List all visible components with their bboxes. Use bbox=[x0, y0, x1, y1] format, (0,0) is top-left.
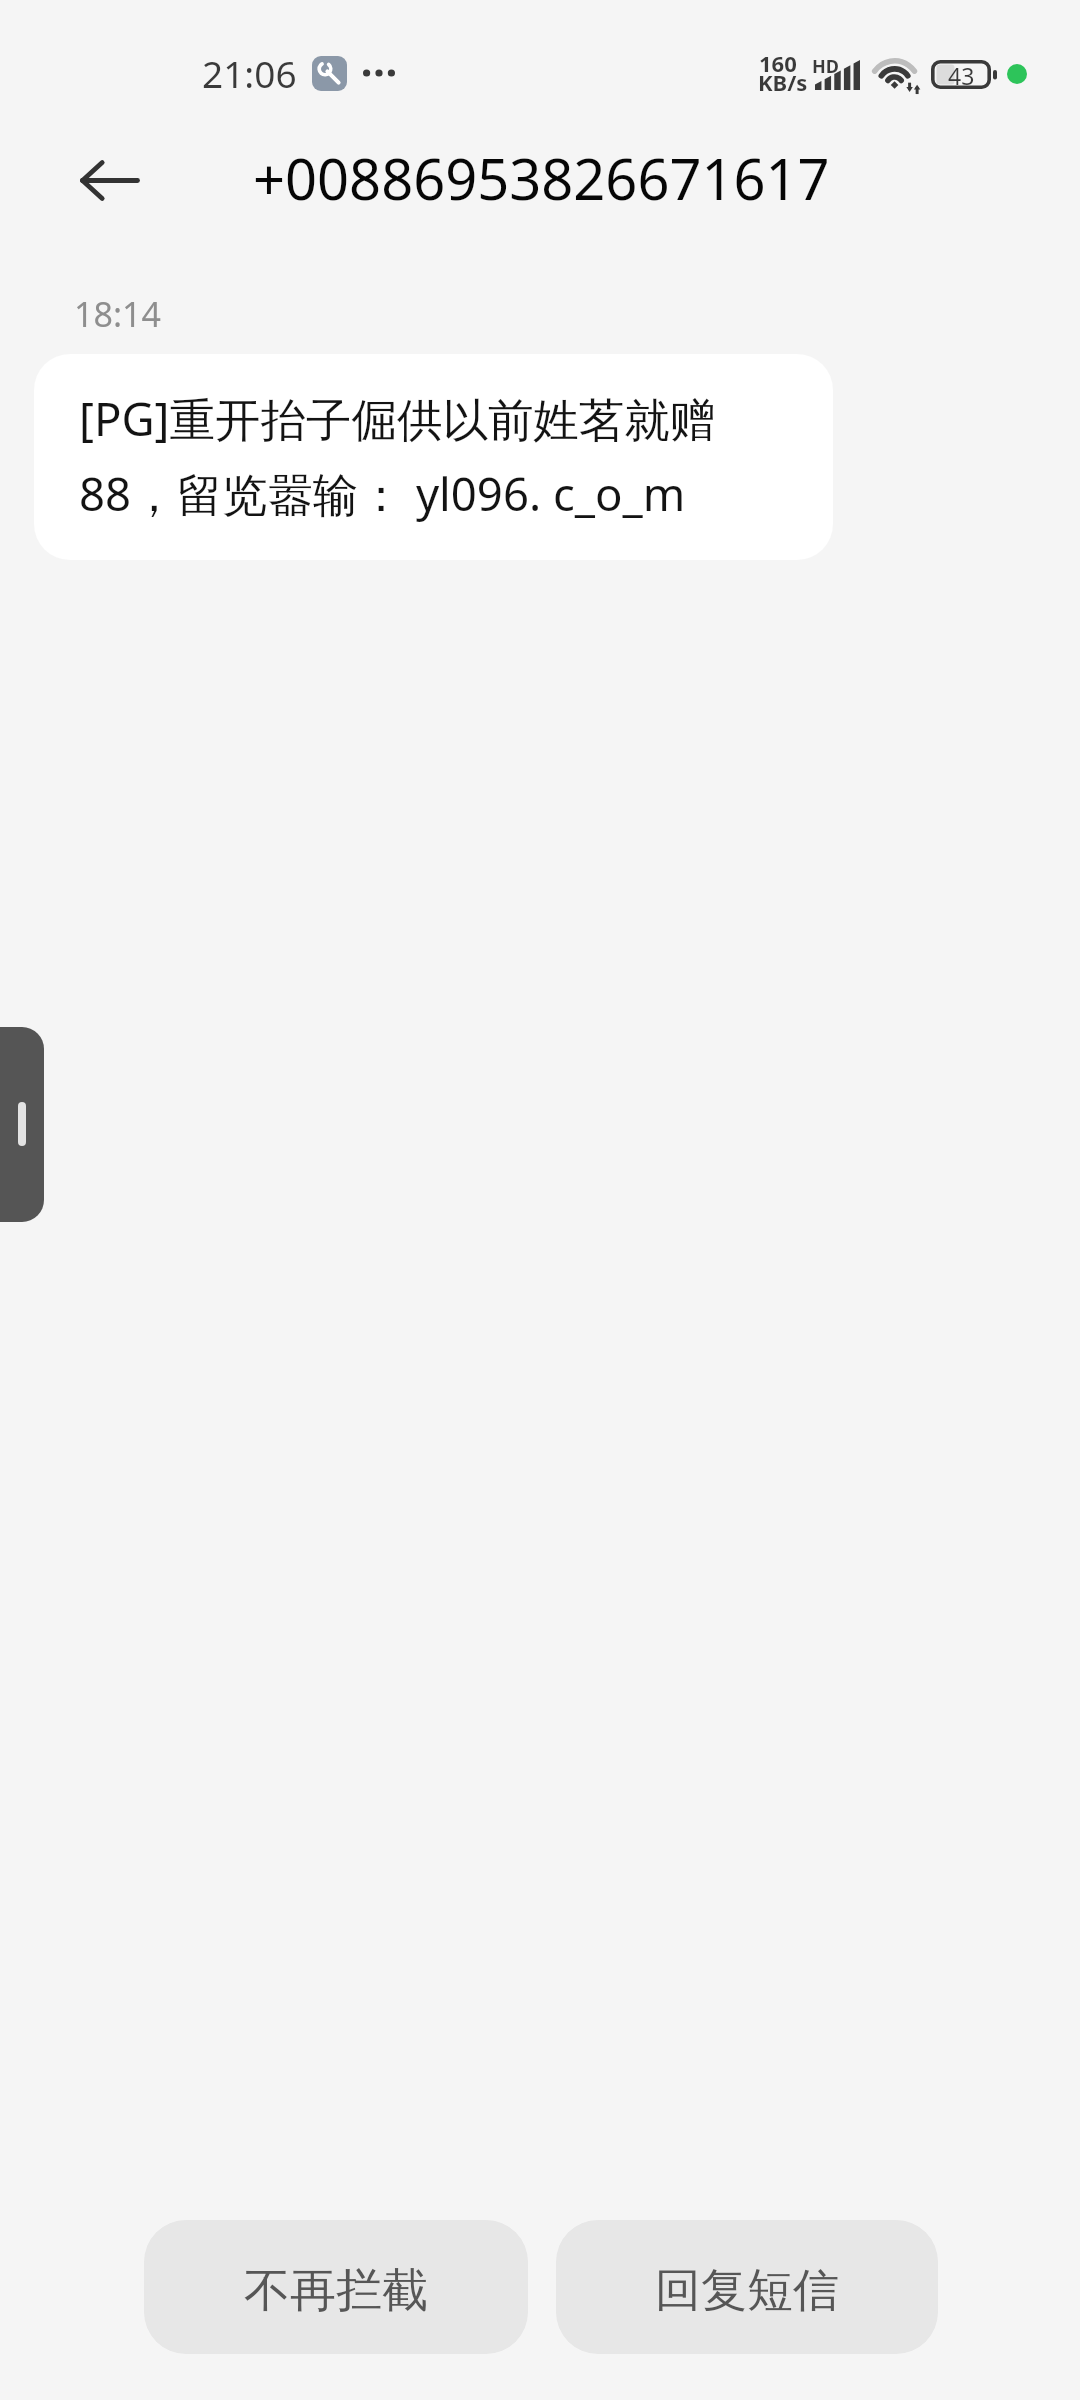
button[interactable]: 不再拦截 bbox=[144, 2220, 528, 2354]
staticText: KB/s bbox=[758, 67, 808, 97]
staticText: +00886953826671617 bbox=[253, 140, 830, 216]
staticText: 18:14 bbox=[74, 291, 161, 337]
button[interactable]: Back bbox=[58, 128, 162, 232]
staticText: 21:06 bbox=[202, 48, 297, 98]
staticText: 回复短信 bbox=[655, 2262, 839, 2320]
button[interactable]: 回复短信 bbox=[556, 2220, 938, 2354]
button[interactable]: +00886953826671617 bbox=[253, 128, 833, 232]
staticText: 160 bbox=[759, 48, 797, 78]
staticText: 不再拦截 bbox=[244, 2262, 428, 2320]
button[interactable]: [PG]重开抬子倔供以前姓茗就赠88，留览嚣输： yl096. c_o_m bbox=[34, 354, 833, 560]
button[interactable]: Open side panel bbox=[0, 1027, 44, 1222]
staticText: [PG]重开抬子倔供以前姓茗就赠88，留览嚣输： yl096. c_o_m bbox=[79, 387, 791, 524]
staticText: HD bbox=[812, 54, 839, 79]
staticText: 43 bbox=[948, 60, 975, 89]
